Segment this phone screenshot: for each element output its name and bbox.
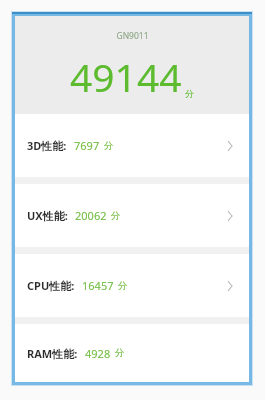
staticText: UX性能: [27,208,68,223]
staticText: 3D性能: [27,138,67,153]
button[interactable]: CPU性能: [15,254,249,317]
button[interactable]: UX性能: [15,184,249,247]
staticText: 20062 [75,208,107,223]
other: View details for UX性能: [223,206,237,226]
staticText: 分 [104,140,114,152]
staticText: 分 [118,280,128,292]
staticText: RAM性能: [27,346,78,361]
staticText: 16457 [82,278,114,293]
staticText: 4928 [85,346,111,361]
staticText: 7697 [74,138,100,153]
staticText: GN9011 [116,30,149,42]
staticText: 分 [111,210,121,222]
button[interactable]: 3D性能: [15,114,249,177]
other: View details for CPU性能: [223,276,237,296]
other: View details for 3D性能: [223,136,237,156]
staticText: 分 [115,347,125,359]
button[interactable]: RAM性能: [15,324,249,382]
staticText: CPU性能: [27,278,75,293]
staticText: 49144 [70,50,182,103]
staticText: 分 [185,88,194,99]
